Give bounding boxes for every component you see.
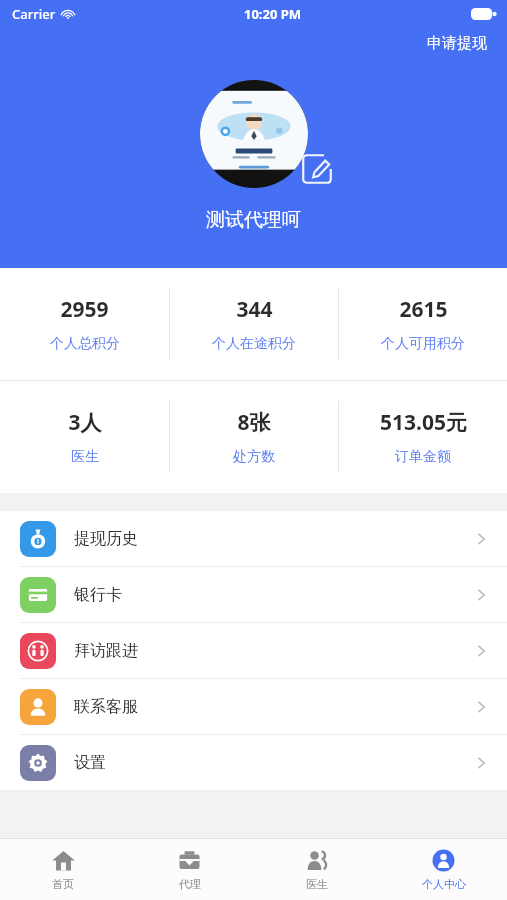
- staticText: 联系客服: [74, 697, 138, 717]
- button[interactable]: 2615: [339, 268, 507, 380]
- button[interactable]: 513.05元: [339, 381, 507, 493]
- staticText: 处方数: [233, 448, 275, 466]
- button[interactable]: 设置: [0, 735, 507, 790]
- button[interactable]: 银行卡: [0, 567, 507, 622]
- staticText: 设置: [74, 753, 106, 773]
- staticText: 医生: [306, 877, 328, 891]
- button[interactable]: 344: [170, 268, 338, 380]
- button[interactable]: 8张: [170, 381, 338, 493]
- button[interactable]: 个人中心: [380, 839, 507, 900]
- staticText: 订单金额: [395, 448, 451, 466]
- staticText: 个人总积分: [50, 335, 120, 353]
- staticText: Carrier: [12, 5, 56, 23]
- staticText: 首页: [52, 877, 74, 891]
- staticText: 个人在途积分: [212, 335, 296, 353]
- staticText: 拜访跟进: [74, 641, 138, 661]
- button[interactable]: 申请提现: [423, 30, 491, 57]
- staticText: 测试代理呵: [206, 208, 301, 232]
- staticText: 代理: [179, 877, 201, 891]
- button[interactable]: Edit profile: [299, 151, 335, 187]
- staticText: 个人可用积分: [381, 335, 465, 353]
- button[interactable]: 2959: [0, 268, 169, 380]
- staticText: 3人: [68, 408, 102, 437]
- staticText: 医生: [71, 448, 99, 466]
- staticText: 344: [236, 295, 273, 324]
- button[interactable]: 代理: [126, 839, 253, 900]
- button[interactable]: 3人: [0, 381, 169, 493]
- staticText: 513.05元: [380, 408, 467, 437]
- button[interactable]: 提现历史: [0, 511, 507, 566]
- staticText: 个人中心: [422, 877, 466, 891]
- staticText: 申请提现: [427, 34, 487, 53]
- button[interactable]: 联系客服: [0, 679, 507, 734]
- button[interactable]: 拜访跟进: [0, 623, 507, 678]
- button[interactable]: [200, 80, 308, 188]
- staticText: 8张: [237, 408, 271, 437]
- staticText: 10:20 PM: [244, 5, 302, 23]
- button[interactable]: 首页: [0, 839, 126, 900]
- button[interactable]: 医生: [253, 839, 380, 900]
- staticText: 2959: [60, 295, 109, 324]
- staticText: 2615: [399, 295, 448, 324]
- staticText: 银行卡: [74, 585, 122, 605]
- staticText: 提现历史: [74, 529, 138, 549]
